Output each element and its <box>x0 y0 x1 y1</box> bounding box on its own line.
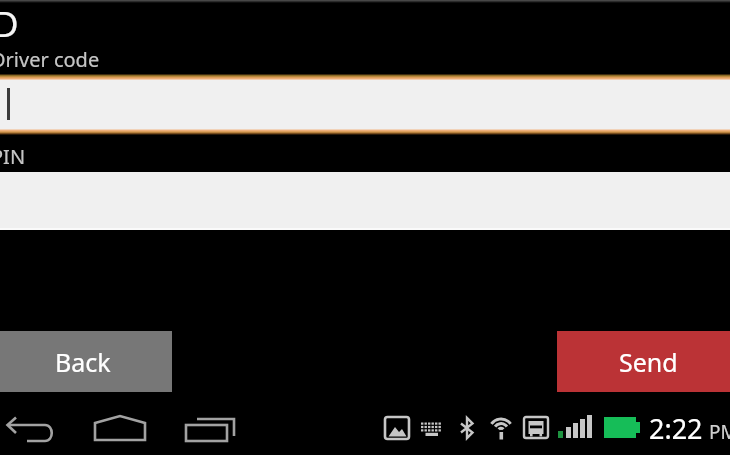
staticText: Back <box>55 345 111 379</box>
button[interactable]: Recent apps <box>180 408 242 455</box>
button[interactable]: Home <box>90 408 152 455</box>
button[interactable]: Back <box>2 408 64 455</box>
button[interactable]: Back <box>0 331 172 392</box>
staticText: D <box>0 0 19 48</box>
staticText: 2:22 <box>649 410 703 447</box>
staticText: PIN <box>0 143 26 170</box>
staticText: PM <box>709 419 730 445</box>
button[interactable]: Send <box>557 331 730 392</box>
staticText: Send <box>619 345 678 379</box>
staticText: Driver code <box>0 46 100 73</box>
button[interactable]: Driver code input field <box>0 80 730 130</box>
